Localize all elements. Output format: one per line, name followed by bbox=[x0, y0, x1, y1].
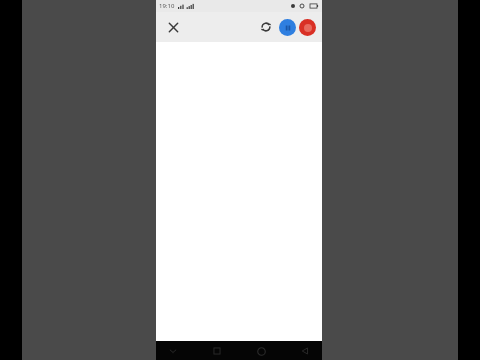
button[interactable]: Pause bbox=[279, 19, 296, 36]
button[interactable]: Recents bbox=[208, 342, 226, 360]
button[interactable]: Close bbox=[162, 16, 184, 38]
button[interactable]: Home bbox=[252, 342, 270, 360]
button[interactable]: Hide bbox=[164, 342, 182, 360]
staticText: 19:10 bbox=[159, 2, 175, 10]
button[interactable]: Record bbox=[299, 19, 316, 36]
button[interactable]: Sync bbox=[255, 16, 277, 38]
button[interactable]: Back bbox=[296, 342, 314, 360]
